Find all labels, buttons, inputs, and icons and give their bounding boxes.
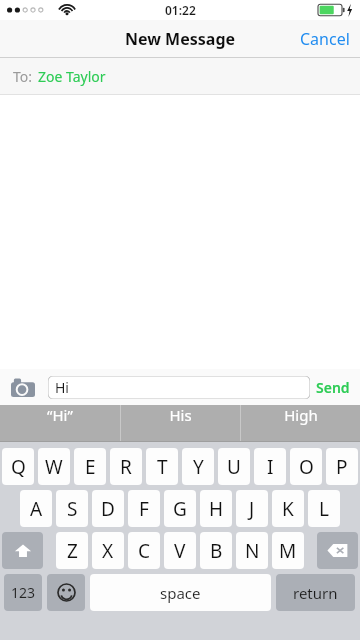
button[interactable]: X xyxy=(92,532,124,569)
staticText: Cancel xyxy=(300,28,350,50)
button[interactable]: His xyxy=(121,405,240,425)
button[interactable]: G xyxy=(164,490,196,527)
button[interactable]: To: xyxy=(0,58,360,94)
button[interactable]: P xyxy=(326,448,358,485)
staticText: P xyxy=(336,454,348,480)
staticText: Hi xyxy=(55,378,69,397)
staticText: C xyxy=(138,538,151,564)
staticText: U xyxy=(227,454,241,480)
staticText: Z xyxy=(67,538,78,564)
staticText: Send xyxy=(316,378,350,397)
staticText: W xyxy=(45,454,63,480)
staticText: High xyxy=(284,405,318,425)
staticText: Q xyxy=(11,454,26,480)
staticText: “Hi” xyxy=(47,405,73,425)
button[interactable]: Backspace xyxy=(317,532,358,569)
button[interactable]: S xyxy=(56,490,88,527)
button[interactable]: Y xyxy=(182,448,214,485)
staticText: T xyxy=(157,454,168,480)
button[interactable]: E xyxy=(74,448,106,485)
button[interactable]: Z xyxy=(56,532,88,569)
button[interactable]: Cancel xyxy=(290,22,360,56)
staticText: New Message xyxy=(125,28,236,50)
staticText: A xyxy=(30,496,43,522)
staticText: 01:22 xyxy=(165,2,196,18)
staticText: D xyxy=(101,496,115,522)
staticText: His xyxy=(169,405,192,425)
staticText: I xyxy=(267,454,274,480)
button[interactable]: C xyxy=(128,532,160,569)
button[interactable]: “Hi” xyxy=(0,405,120,425)
staticText: Y xyxy=(193,454,204,480)
staticText: M xyxy=(279,538,297,564)
staticText: space xyxy=(160,583,201,603)
button[interactable]: Hi xyxy=(48,376,310,399)
button[interactable]: Camera xyxy=(6,372,40,402)
button[interactable]: O xyxy=(290,448,322,485)
staticText: R xyxy=(120,454,132,480)
button[interactable]: Send xyxy=(312,373,354,402)
staticText: F xyxy=(139,496,149,522)
button[interactable]: T xyxy=(146,448,178,485)
button[interactable]: N xyxy=(236,532,268,569)
button[interactable]: V xyxy=(164,532,196,569)
staticText: 123 xyxy=(11,583,36,602)
staticText: H xyxy=(209,496,224,522)
staticText: return xyxy=(293,583,338,603)
staticText: K xyxy=(282,496,294,522)
button[interactable]: space xyxy=(90,574,271,611)
button[interactable]: J xyxy=(236,490,268,527)
staticText: V xyxy=(174,538,186,564)
button[interactable]: W xyxy=(38,448,70,485)
button[interactable]: B xyxy=(200,532,232,569)
button[interactable]: K xyxy=(272,490,304,527)
button[interactable]: M xyxy=(272,532,304,569)
button[interactable]: High xyxy=(241,405,360,425)
staticText: N xyxy=(245,538,260,564)
button[interactable]: Emoji xyxy=(47,574,85,611)
button[interactable]: U xyxy=(218,448,250,485)
staticText: G xyxy=(173,496,187,522)
staticText: To: xyxy=(13,67,33,86)
staticText: E xyxy=(85,454,96,480)
staticText: L xyxy=(319,496,329,522)
button[interactable]: Shift xyxy=(2,532,43,569)
staticText: J xyxy=(249,496,255,522)
button[interactable]: D xyxy=(92,490,124,527)
staticText: X xyxy=(102,538,114,564)
button[interactable]: return xyxy=(276,574,355,611)
staticText: O xyxy=(299,454,314,480)
button[interactable]: Q xyxy=(2,448,34,485)
button[interactable]: L xyxy=(308,490,340,527)
button[interactable]: A xyxy=(20,490,52,527)
staticText: Zoe Taylor xyxy=(38,67,106,86)
button[interactable]: 123 xyxy=(4,574,42,611)
button[interactable]: H xyxy=(200,490,232,527)
button[interactable]: I xyxy=(254,448,286,485)
button[interactable]: F xyxy=(128,490,160,527)
staticText: B xyxy=(210,538,223,564)
staticText: S xyxy=(67,496,78,522)
button[interactable]: R xyxy=(110,448,142,485)
